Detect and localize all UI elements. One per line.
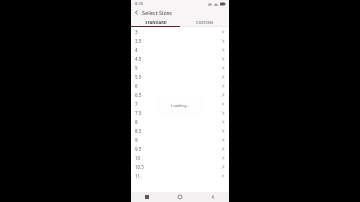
button[interactable]: CUSTOM bbox=[180, 18, 229, 26]
button[interactable]: 10.5 bbox=[131, 162, 229, 171]
button[interactable]: 8 bbox=[131, 117, 229, 126]
staticText: 9 bbox=[135, 137, 138, 143]
staticText: 8.5 bbox=[135, 128, 142, 134]
staticText: 3 bbox=[135, 29, 138, 35]
staticText: 6 bbox=[135, 83, 138, 89]
button[interactable]: 7.5 bbox=[131, 108, 229, 117]
staticText: 7 bbox=[135, 101, 138, 107]
button[interactable]: 11 bbox=[131, 171, 229, 180]
staticText: Loading... bbox=[171, 103, 190, 108]
staticText: 9.5 bbox=[135, 146, 142, 152]
button[interactable]: 7 bbox=[131, 99, 229, 108]
staticText: 8 bbox=[135, 119, 138, 125]
staticText: 11 bbox=[135, 173, 141, 179]
button[interactable]: Back bbox=[131, 7, 142, 18]
staticText: 6.5 bbox=[135, 92, 142, 98]
staticText: 10.5 bbox=[135, 164, 144, 170]
staticText: 4.5 bbox=[135, 56, 142, 62]
button[interactable]: 9.5 bbox=[131, 144, 229, 153]
staticText: 10 bbox=[135, 155, 141, 161]
button[interactable]: 4 bbox=[131, 45, 229, 54]
button[interactable]: 10 bbox=[131, 153, 229, 162]
button[interactable]: 3 bbox=[131, 27, 229, 36]
button[interactable]: Home bbox=[163, 192, 196, 202]
button[interactable]: 6.5 bbox=[131, 90, 229, 99]
staticText: 5.5 bbox=[135, 74, 142, 80]
button[interactable]: STANDARD bbox=[131, 18, 180, 26]
button[interactable]: 4.5 bbox=[131, 54, 229, 63]
staticText: 4 bbox=[135, 47, 138, 53]
button[interactable]: 3.5 bbox=[131, 36, 229, 45]
button[interactable]: Back bbox=[196, 192, 229, 202]
button[interactable]: 6 bbox=[131, 81, 229, 90]
staticText: CUSTOM bbox=[196, 20, 213, 25]
button[interactable]: 5 bbox=[131, 63, 229, 72]
staticText: 7.5 bbox=[135, 110, 142, 116]
button[interactable]: 5.5 bbox=[131, 72, 229, 81]
staticText: Select Sizes bbox=[142, 9, 173, 16]
button[interactable]: Recent apps bbox=[131, 192, 163, 202]
staticText: 8:30 bbox=[135, 1, 143, 6]
staticText: STANDARD bbox=[145, 20, 167, 25]
button[interactable]: 9 bbox=[131, 135, 229, 144]
button[interactable]: 8.5 bbox=[131, 126, 229, 135]
staticText: 5 bbox=[135, 65, 138, 71]
staticText: 3.5 bbox=[135, 38, 142, 44]
